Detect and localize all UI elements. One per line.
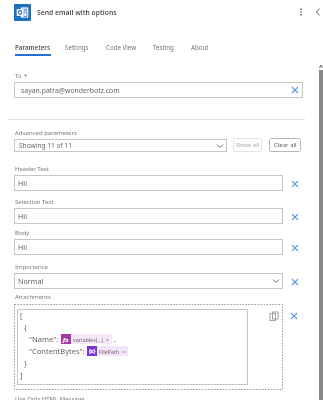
staticText: Settings <box>65 43 89 51</box>
staticText: Attachments <box>15 293 51 301</box>
button[interactable]: Code View <box>106 43 137 56</box>
staticText: Parameters <box>15 43 51 51</box>
staticText: Header Text <box>15 165 49 173</box>
button[interactable]: Remove Importance <box>289 276 300 287</box>
button[interactable]: Remove Header Text <box>289 178 300 189</box>
staticText: ] <box>20 370 23 380</box>
staticText: fx <box>63 336 69 343</box>
button[interactable]: Remove Body <box>289 242 300 253</box>
button[interactable]: Hii <box>14 175 283 191</box>
button[interactable]: Remove Selection Text <box>289 211 300 222</box>
staticText: , <box>112 334 116 344</box>
button[interactable]: Copy <box>269 311 280 322</box>
staticText: [ <box>20 310 23 320</box>
staticText: Send email with options <box>37 8 117 17</box>
button[interactable]: Normal <box>14 273 283 289</box>
staticText: Body <box>15 229 30 237</box>
staticText: * <box>24 72 28 80</box>
staticText: Testing <box>153 43 174 51</box>
staticText: About <box>191 43 209 51</box>
button[interactable]: sayan.patra@wonderbotz.com <box>14 82 303 98</box>
staticText: × <box>122 348 126 355</box>
button[interactable]: Showing 11 of 11 <box>14 139 227 152</box>
staticText: Show all <box>236 141 260 149</box>
staticText: Normal <box>18 276 44 286</box>
button[interactable]: Testing <box>153 43 174 56</box>
staticText: { <box>24 322 27 332</box>
staticText: Use Only HTML Message <box>15 395 85 400</box>
button[interactable]: Remove Attachments <box>288 310 299 321</box>
staticText: Advanced parameters <box>15 129 77 137</box>
staticText: Clear all <box>274 141 297 149</box>
staticText: variables(...) <box>73 336 104 343</box>
staticText: Hii <box>18 211 28 221</box>
button[interactable]: More options <box>294 5 308 19</box>
staticText: Importance <box>15 263 48 271</box>
staticText: "Name": <box>29 334 61 344</box>
staticText: } <box>24 358 27 368</box>
button[interactable]: [ <box>17 309 248 385</box>
staticText: Hii <box>18 242 28 252</box>
staticText: "ContentBytes": <box>29 346 87 356</box>
staticText: Selection Text <box>15 198 54 206</box>
button[interactable]: Hii <box>14 239 283 255</box>
button[interactable]: Parameters <box>15 43 51 56</box>
staticText: {x} <box>89 348 96 354</box>
staticText: Code View <box>106 43 137 51</box>
button[interactable]: Collapse pane <box>311 5 323 19</box>
staticText: × <box>106 336 110 343</box>
button[interactable]: Clear all <box>269 138 301 152</box>
staticText: FilePath <box>99 348 120 355</box>
button[interactable]: Settings <box>65 43 89 56</box>
button[interactable]: fx <box>61 334 112 344</box>
button[interactable]: About <box>191 43 209 56</box>
button[interactable]: Hii <box>14 208 283 224</box>
button[interactable]: {x} <box>87 346 128 356</box>
staticText: To <box>15 72 22 80</box>
button[interactable]: Show all <box>233 138 262 152</box>
staticText: sayan.patra@wonderbotz.com <box>21 86 120 95</box>
staticText: Showing 11 of 11 <box>19 141 73 150</box>
staticText: Hii <box>18 178 28 188</box>
